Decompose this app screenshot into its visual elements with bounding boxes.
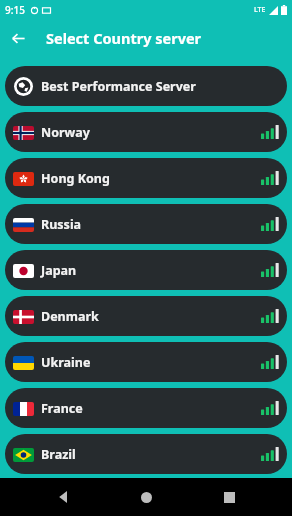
staticText: LTE bbox=[254, 5, 266, 15]
staticText: Japan bbox=[41, 262, 77, 279]
staticText: Ukraine bbox=[41, 354, 91, 371]
staticText: Denmark bbox=[41, 308, 99, 325]
staticText: Hong Kong bbox=[41, 170, 110, 187]
button[interactable]: Ukraine bbox=[5, 342, 287, 382]
button[interactable]: France bbox=[5, 388, 287, 428]
button[interactable]: Denmark bbox=[5, 296, 287, 336]
staticText: Select Country server bbox=[46, 28, 202, 48]
button[interactable]: Brazil bbox=[5, 434, 287, 474]
staticText: Brazil bbox=[41, 446, 76, 463]
button[interactable]: Best Performance Server bbox=[5, 66, 287, 106]
button[interactable]: Russia bbox=[5, 204, 287, 244]
button[interactable]: Back bbox=[0, 20, 36, 56]
staticText: Best Performance Server bbox=[41, 78, 196, 95]
button[interactable]: Recents bbox=[210, 478, 248, 516]
button[interactable]: Home bbox=[127, 478, 165, 516]
button[interactable]: Hong Kong bbox=[5, 158, 287, 198]
staticText: 9:15 bbox=[5, 3, 25, 17]
button[interactable]: Japan bbox=[5, 250, 287, 290]
staticText: Russia bbox=[41, 216, 82, 233]
button[interactable]: Norway bbox=[5, 112, 287, 152]
staticText: France bbox=[41, 400, 83, 417]
staticText: Norway bbox=[41, 124, 90, 141]
button[interactable]: Back bbox=[45, 478, 83, 516]
